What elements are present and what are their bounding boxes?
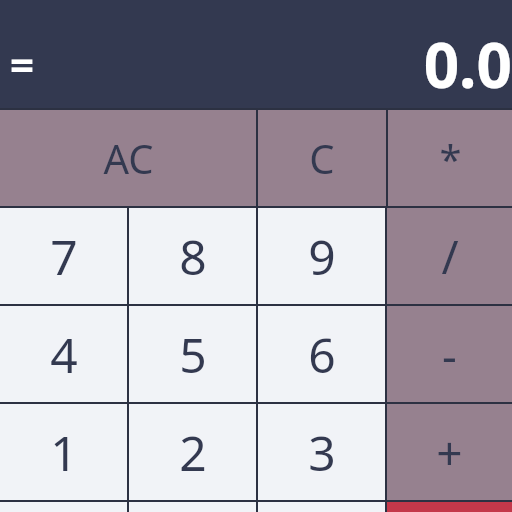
button[interactable]: AC	[0, 110, 256, 206]
button[interactable]: 4	[0, 306, 127, 402]
button[interactable]: 1	[0, 404, 127, 500]
button[interactable]: 5	[129, 306, 256, 402]
staticText: 0.0	[423, 22, 512, 106]
staticText: 6	[308, 322, 336, 387]
button[interactable]: 8	[129, 208, 256, 304]
staticText: 2	[179, 420, 207, 485]
staticText: -	[442, 323, 457, 386]
button[interactable]: -	[387, 306, 512, 402]
staticText: 8	[179, 224, 207, 289]
button[interactable]: 2	[129, 404, 256, 500]
button[interactable]: Pending operator equals	[4, 33, 41, 94]
button[interactable]: C	[258, 110, 386, 206]
button[interactable]: 3	[258, 404, 385, 500]
staticText: /	[441, 225, 459, 288]
staticText: 7	[50, 224, 78, 289]
button[interactable]: +	[387, 404, 512, 500]
staticText: 9	[308, 224, 336, 289]
staticText: =	[10, 35, 35, 92]
button[interactable]: /	[387, 208, 512, 304]
staticText: C	[309, 131, 335, 185]
staticText: AC	[103, 131, 154, 185]
button[interactable]: 9	[258, 208, 385, 304]
button[interactable]: *	[388, 110, 512, 206]
button[interactable]: 6	[258, 306, 385, 402]
staticText: 4	[50, 322, 78, 387]
staticText: +	[436, 421, 463, 484]
staticText: 5	[179, 322, 207, 387]
staticText: 3	[308, 420, 336, 485]
staticText: 1	[50, 420, 78, 485]
button[interactable]: 7	[0, 208, 127, 304]
staticText: *	[439, 131, 462, 185]
